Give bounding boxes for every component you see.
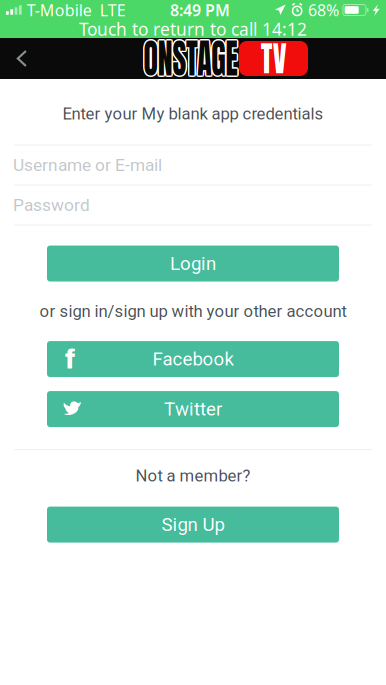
staticText: ONSTAGE bbox=[129, 28, 255, 89]
staticText: ONSTAGE bbox=[127, 28, 253, 89]
button[interactable]: Twitter bbox=[47, 391, 339, 427]
staticText: Twitter bbox=[164, 398, 222, 420]
staticText: Enter your My blank app credentials bbox=[62, 104, 323, 123]
button[interactable]: Touch to return to call 14:12 bbox=[0, 20, 386, 38]
staticText: TV bbox=[258, 32, 288, 85]
staticText: or sign in/sign up with your other accou… bbox=[39, 301, 346, 321]
staticText: Facebook bbox=[152, 348, 233, 370]
staticText: ONSTAGE bbox=[127, 27, 253, 87]
staticText: ONSTAGE bbox=[128, 27, 254, 88]
staticText: T-Mobile bbox=[27, 0, 92, 21]
staticText: ONSTAGE bbox=[126, 27, 252, 88]
staticText: f bbox=[65, 344, 75, 374]
staticText: Login bbox=[170, 253, 216, 274]
staticText: ONSTAGE bbox=[127, 30, 253, 90]
staticText: LTE bbox=[100, 0, 126, 21]
staticText: Password bbox=[13, 195, 90, 215]
button[interactable]: Sign Up bbox=[47, 507, 339, 543]
button[interactable]: Back bbox=[0, 38, 44, 79]
staticText: ONSTAGE bbox=[126, 29, 252, 90]
staticText: Touch to return to call 14:12 bbox=[79, 17, 307, 40]
staticText: Not a member? bbox=[135, 466, 250, 486]
button[interactable]: Facebook bbox=[47, 341, 339, 377]
staticText: 8:49 PM bbox=[170, 0, 230, 21]
staticText: ONSTAGE bbox=[126, 28, 252, 89]
staticText: Username or E-mail bbox=[13, 155, 162, 175]
staticText: ONSTAGE bbox=[128, 29, 254, 90]
button[interactable]: Login bbox=[47, 245, 339, 281]
staticText: 68% bbox=[308, 0, 339, 21]
staticText: Sign Up bbox=[161, 514, 224, 536]
